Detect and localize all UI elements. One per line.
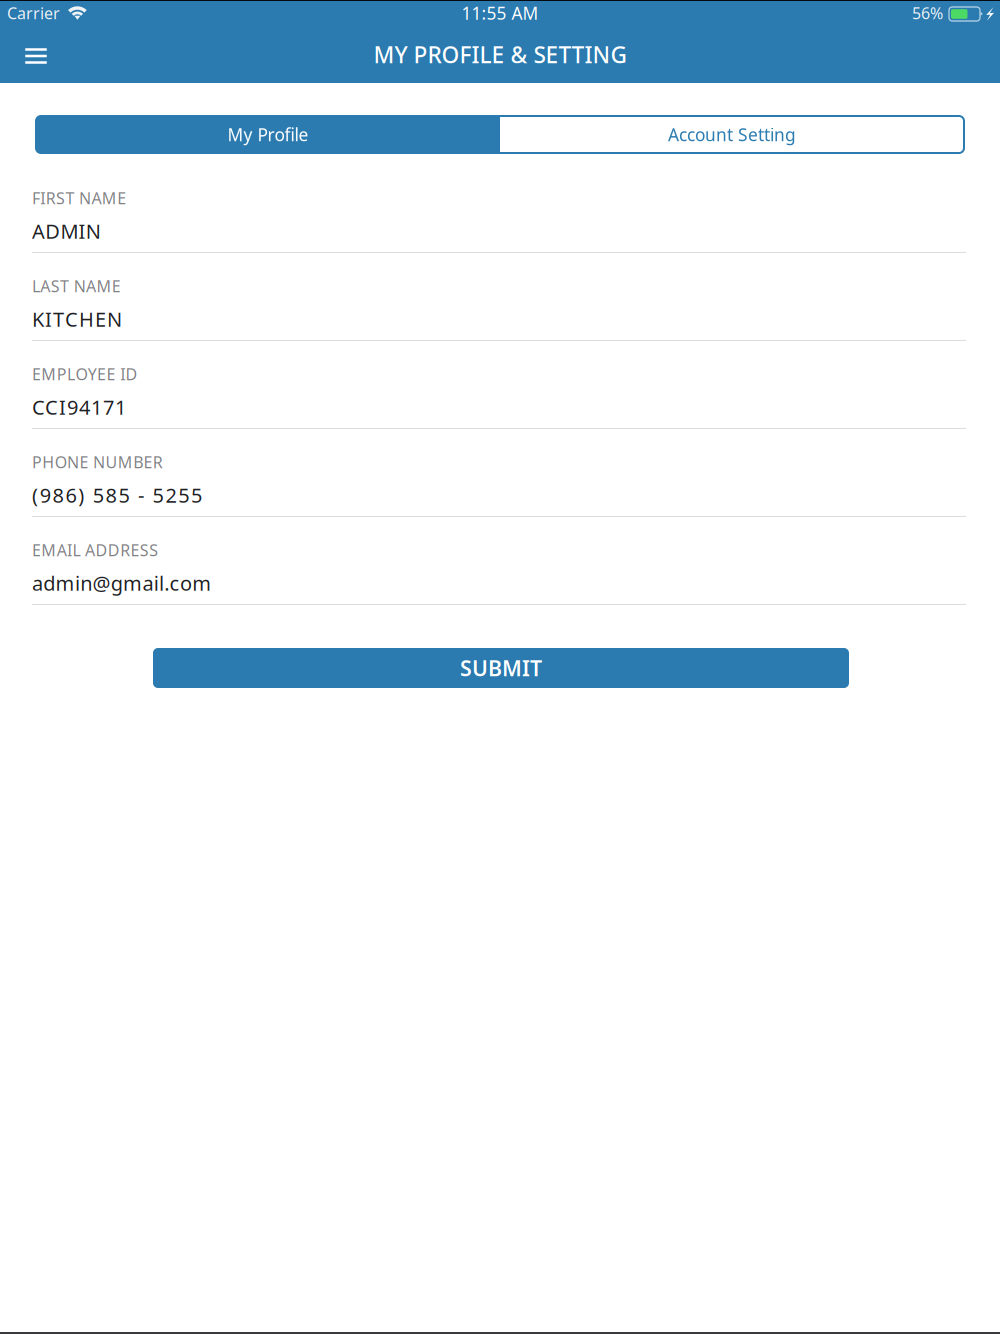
staticText: Carrier (7, 2, 60, 24)
staticText: PHONE NUMBER (32, 451, 163, 473)
staticText: 56% (912, 2, 943, 24)
staticText: SUBMIT (460, 654, 542, 682)
staticText: ADMIN (32, 218, 101, 244)
button[interactable]: CCI94171 (32, 397, 966, 429)
button[interactable]: My Profile (36, 116, 500, 153)
staticText: FIRST NAME (32, 187, 126, 209)
staticText: EMPLOYEE ID (32, 363, 137, 385)
staticText: LAST NAME (32, 275, 121, 297)
staticText: EMAIL ADDRESS (32, 539, 158, 561)
button[interactable]: ADMIN (32, 221, 966, 253)
staticText: Account Setting (668, 123, 796, 146)
staticText: (986) 585 - 5255 (32, 482, 202, 508)
button[interactable]: Menu (8, 26, 64, 83)
staticText: admin@gmail.com (32, 570, 211, 596)
button[interactable]: Account Setting (500, 116, 964, 153)
staticText: KITCHEN (32, 306, 122, 332)
staticText: My Profile (227, 123, 308, 146)
staticText: CCI94171 (32, 394, 126, 420)
button[interactable]: admin@gmail.com (32, 573, 966, 605)
button[interactable]: KITCHEN (32, 309, 966, 341)
button[interactable]: (986) 585 - 5255 (32, 485, 966, 517)
staticText: MY PROFILE & SETTING (373, 39, 626, 69)
button[interactable]: SUBMIT (153, 648, 849, 688)
staticText: 11:55 AM (461, 1, 538, 24)
